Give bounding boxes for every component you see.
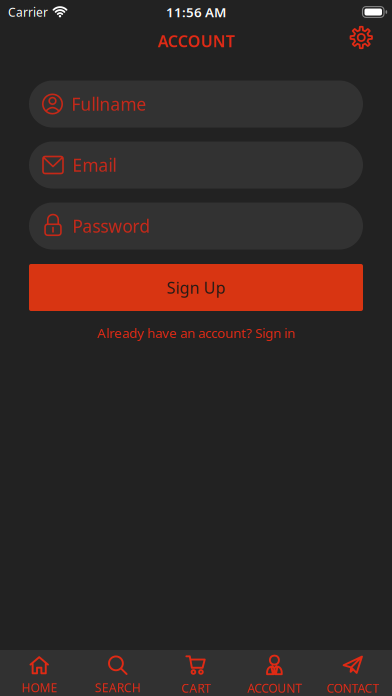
staticText: SEARCH — [95, 679, 141, 695]
staticText: Sign Up — [166, 277, 225, 298]
staticText: Carrier — [8, 4, 48, 20]
staticText: Already have an account? Sign in — [97, 324, 295, 342]
staticText: 11:56 AM — [166, 3, 226, 21]
staticText: Email — [72, 153, 116, 176]
staticText: CART — [181, 680, 211, 696]
staticText: CONTACT — [326, 680, 379, 696]
staticText: HOME — [21, 679, 57, 695]
staticText: ACCOUNT — [247, 680, 302, 696]
staticText: ACCOUNT — [157, 30, 234, 52]
staticText: Password — [72, 214, 150, 237]
staticText: Fullname — [71, 92, 146, 115]
